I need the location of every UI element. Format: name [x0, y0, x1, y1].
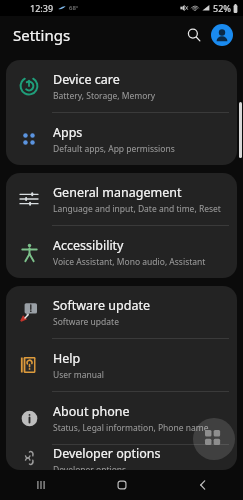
- button[interactable]: Accessibility: [6, 226, 237, 278]
- button[interactable]: Help: [6, 339, 237, 391]
- staticText: Battery, Storage, Memory: [53, 90, 156, 102]
- staticText: 12:39: [30, 2, 54, 14]
- button[interactable]: Software update: [6, 286, 237, 338]
- staticText: 52%: [213, 2, 231, 14]
- button[interactable]: Account: [211, 24, 233, 46]
- button[interactable]: General management: [6, 173, 237, 225]
- staticText: Settings: [13, 25, 71, 45]
- staticText: General management: [53, 184, 182, 201]
- button[interactable]: Back: [162, 470, 243, 500]
- staticText: Status, Legal information, Phone name: [53, 422, 209, 434]
- staticText: Default apps, App permissions: [53, 143, 175, 155]
- staticText: Help: [53, 350, 81, 367]
- button[interactable]: Recents: [0, 470, 81, 500]
- staticText: Apps: [53, 124, 83, 141]
- staticText: About phone: [53, 403, 130, 420]
- button[interactable]: Home: [81, 470, 162, 500]
- button[interactable]: Search: [181, 22, 207, 48]
- staticText: Software update: [53, 297, 150, 314]
- button[interactable]: Quick settings grid: [193, 418, 235, 460]
- staticText: Language and input, Date and time, Reset: [53, 203, 221, 215]
- button[interactable]: Apps: [6, 113, 237, 165]
- staticText: Device care: [53, 71, 120, 88]
- button[interactable]: About phone: [6, 392, 237, 444]
- button[interactable]: Device care: [6, 60, 237, 112]
- staticText: Developer options: [53, 445, 161, 462]
- staticText: Accessibility: [53, 237, 124, 254]
- staticText: User manual: [53, 369, 104, 381]
- button[interactable]: Developer options: [6, 445, 237, 470]
- staticText: Software update: [53, 316, 119, 328]
- staticText: Developer options: [53, 464, 127, 470]
- staticText: Voice Assistant, Mono audio, Assistant m…: [53, 256, 229, 268]
- staticText: 68°: [69, 4, 79, 12]
